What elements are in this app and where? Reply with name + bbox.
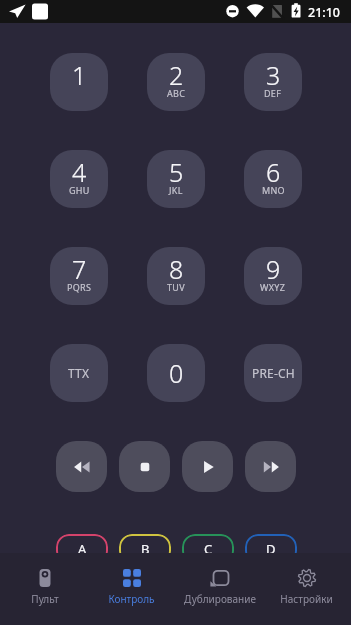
button[interactable]: 4 [50, 150, 108, 208]
staticText: MNO [262, 184, 285, 196]
button[interactable]: B [119, 534, 171, 564]
staticText: 1 [72, 58, 87, 92]
staticText: 9 [266, 252, 281, 286]
staticText: JKL [169, 184, 183, 196]
staticText: Контроль [108, 592, 155, 606]
staticText: 2 [169, 58, 184, 92]
button[interactable]: 8 [147, 247, 205, 305]
button[interactable]: Settings [263, 553, 350, 625]
staticText: A [78, 540, 87, 558]
staticText: DEF [264, 87, 282, 99]
staticText: 3 [266, 58, 281, 92]
button[interactable]: Play [182, 441, 233, 492]
staticText: 0 [169, 356, 184, 390]
staticText: 21:10 [308, 4, 341, 21]
staticText: 5 [169, 155, 184, 189]
staticText: PRE-CH [252, 365, 295, 381]
staticText: WXYZ [260, 281, 286, 293]
staticText: 4 [72, 155, 87, 189]
button[interactable]: D [245, 534, 297, 564]
button[interactable]: PRE-CH [244, 344, 302, 402]
staticText: ABC [167, 87, 186, 99]
staticText: 8 [169, 252, 184, 286]
staticText: TTX [68, 365, 90, 381]
button[interactable]: C [182, 534, 234, 564]
staticText: Пульт [31, 592, 59, 606]
staticText: C [204, 540, 213, 558]
staticText: 6 [266, 155, 281, 189]
button[interactable]: A [56, 534, 108, 564]
button[interactable]: Stop [119, 441, 170, 492]
button[interactable]: 0 [147, 344, 205, 402]
button[interactable]: TTX [50, 344, 108, 402]
staticText: B [141, 540, 150, 558]
staticText: 7 [72, 252, 87, 286]
button[interactable]: 3 [244, 53, 302, 111]
staticText: TUV [167, 281, 185, 293]
button[interactable]: Fast forward [245, 441, 296, 492]
button[interactable]: 7 [50, 247, 108, 305]
button[interactable]: 2 [147, 53, 205, 111]
button[interactable]: 5 [147, 150, 205, 208]
button[interactable]: Rewind [56, 441, 107, 492]
button[interactable]: 9 [244, 247, 302, 305]
button[interactable]: Screen mirroring [176, 553, 263, 625]
button[interactable]: 1 [50, 53, 108, 111]
button[interactable]: Remote [1, 553, 88, 625]
staticText: Настройки [280, 592, 333, 606]
staticText: PQRS [67, 281, 92, 293]
staticText: D [266, 540, 276, 558]
button[interactable]: Control [88, 553, 175, 625]
staticText: GHU [69, 184, 90, 196]
staticText: Дублирование [184, 592, 256, 606]
button[interactable]: 6 [244, 150, 302, 208]
